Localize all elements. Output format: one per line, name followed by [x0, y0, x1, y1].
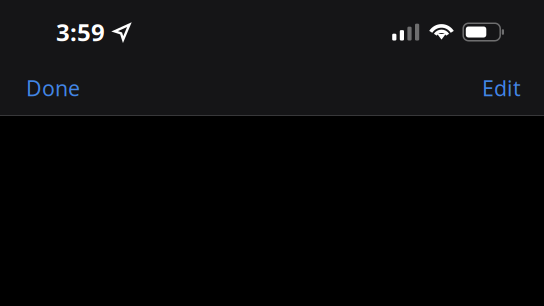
staticText: Edit — [482, 74, 521, 102]
button[interactable]: Done — [0, 64, 94, 112]
button[interactable]: Edit — [468, 64, 544, 112]
staticText: 3:59 — [56, 16, 105, 48]
staticText: Done — [26, 74, 80, 102]
